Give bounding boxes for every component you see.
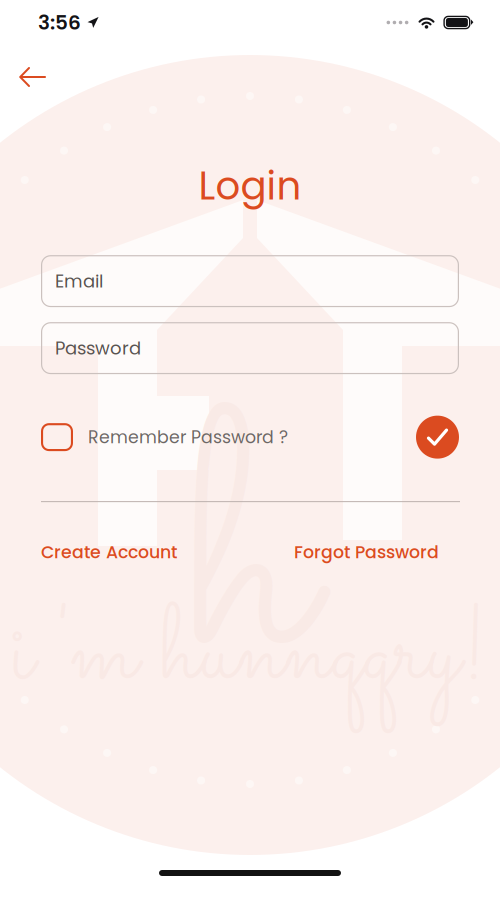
staticText: 3:56 xyxy=(38,8,81,36)
staticText: Remember Password ? xyxy=(88,425,288,449)
staticText: Create Account xyxy=(41,540,177,564)
button[interactable]: Create Account xyxy=(41,540,177,564)
button[interactable]: Email xyxy=(41,255,459,307)
button[interactable]: Password xyxy=(41,322,459,374)
staticText: Login xyxy=(198,159,301,213)
button[interactable]: Forgot Password xyxy=(294,540,439,564)
button[interactable]: Confirm xyxy=(416,416,459,459)
staticText: Email xyxy=(55,268,103,294)
button[interactable]: Remember Password ? xyxy=(41,414,288,460)
staticText: Forgot Password xyxy=(294,540,439,564)
button[interactable]: Back xyxy=(8,55,57,99)
staticText: Password xyxy=(55,335,141,361)
staticText: h xyxy=(187,330,312,816)
